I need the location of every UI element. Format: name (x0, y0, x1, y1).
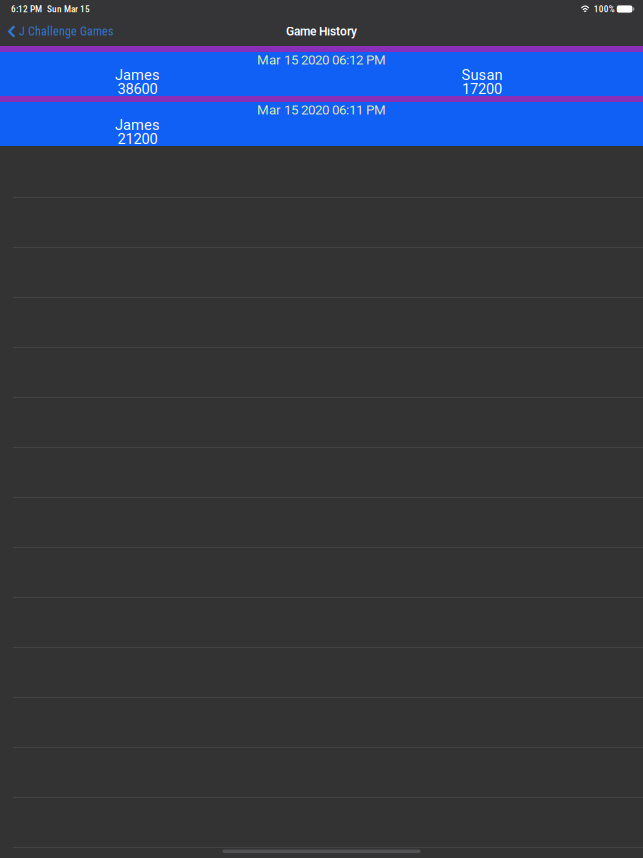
staticText: Game History (286, 24, 357, 39)
staticText: 100% (594, 3, 615, 14)
staticText: James (115, 66, 160, 84)
button[interactable]: J Challenge Games (0, 20, 121, 46)
staticText: Sun Mar 15 (47, 3, 90, 14)
staticText: 38600 (117, 80, 157, 98)
staticText: Susan (461, 66, 502, 84)
staticText: 21200 (117, 130, 157, 148)
staticText: 17200 (462, 80, 502, 98)
staticText: J Challenge Games (19, 24, 113, 39)
staticText: Mar 15 2020 06:12 PM (257, 52, 386, 68)
button[interactable]: Mar 15 2020 06:12 PM (0, 52, 643, 96)
button[interactable]: Mar 15 2020 06:11 PM (0, 102, 643, 146)
staticText: 6:12 PM (11, 3, 42, 14)
staticText: Mar 15 2020 06:11 PM (257, 102, 386, 118)
staticText: James (115, 116, 160, 134)
